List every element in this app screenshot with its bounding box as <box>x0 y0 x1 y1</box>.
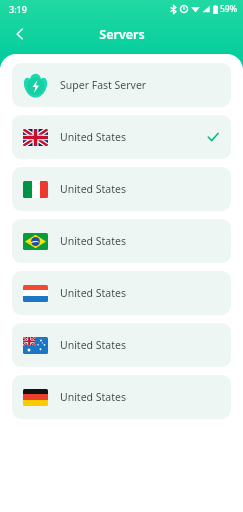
button[interactable]: United States <box>12 271 231 315</box>
staticText: United States <box>60 286 126 300</box>
staticText: Servers <box>99 26 145 43</box>
button[interactable]: United States <box>12 115 231 159</box>
staticText: United States <box>60 234 126 248</box>
button[interactable]: United States <box>12 323 231 367</box>
staticText: United States <box>60 390 126 404</box>
button[interactable]: Super Fast Server <box>12 63 231 107</box>
staticText: United States <box>60 182 126 196</box>
staticText: United States <box>60 338 126 352</box>
staticText: United States <box>60 130 126 144</box>
button[interactable]: United States <box>12 375 231 419</box>
staticText: 59% <box>220 3 237 15</box>
staticText: 3:19 <box>9 3 27 15</box>
button[interactable]: Back <box>6 20 34 48</box>
button[interactable]: United States <box>12 167 231 211</box>
button[interactable]: United States <box>12 219 231 263</box>
staticText: Super Fast Server <box>60 78 147 92</box>
